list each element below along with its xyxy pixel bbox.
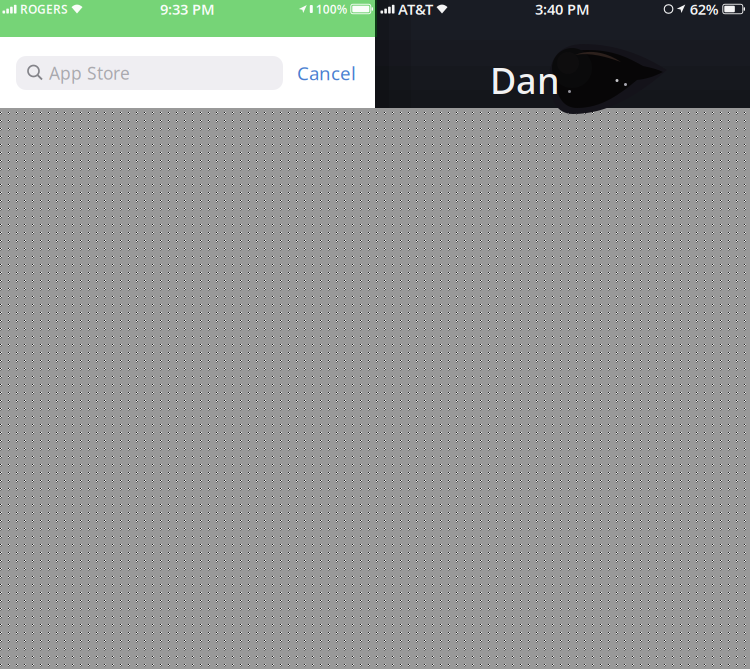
staticText: 62% [690, 0, 719, 19]
staticText: 3:40 PM [535, 0, 590, 19]
staticText: 100% [316, 1, 348, 17]
staticText: 9:33 PM [160, 0, 215, 19]
staticText: AT&T [398, 0, 433, 19]
staticText: Cancel [297, 61, 356, 85]
staticText: App Store [49, 61, 130, 84]
staticText: Dan [490, 56, 560, 104]
button[interactable]: App Store [16, 56, 283, 90]
button[interactable]: Cancel [292, 56, 361, 90]
staticText: ROGERS [20, 1, 68, 17]
